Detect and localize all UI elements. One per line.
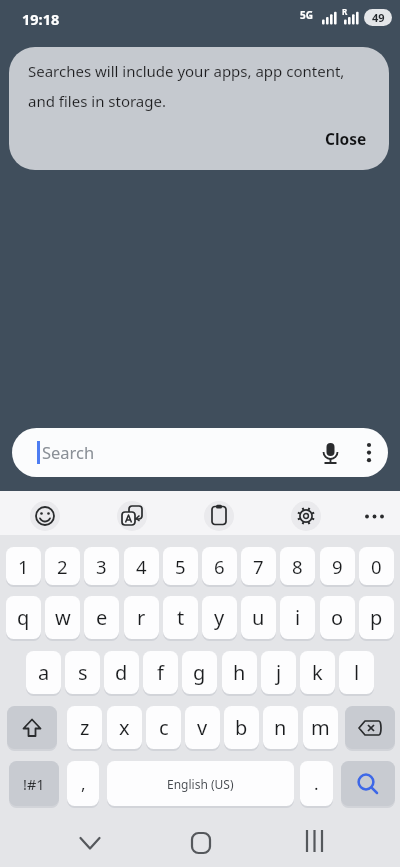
staticText: 4 bbox=[136, 554, 147, 579]
staticText: 5G bbox=[300, 8, 313, 22]
button[interactable] bbox=[300, 828, 330, 854]
button[interactable]: l bbox=[339, 651, 374, 694]
staticText: e bbox=[96, 604, 108, 631]
staticText: . bbox=[314, 772, 319, 795]
button[interactable]: r bbox=[124, 596, 159, 639]
button[interactable]: m bbox=[303, 706, 338, 749]
staticText: 49 bbox=[372, 10, 385, 25]
button[interactable]: t bbox=[163, 596, 198, 639]
button[interactable] bbox=[291, 501, 321, 531]
button[interactable]: y bbox=[202, 596, 237, 639]
staticText: 3 bbox=[96, 554, 107, 579]
staticText: z bbox=[80, 714, 90, 741]
button[interactable]: v bbox=[185, 706, 220, 749]
staticText: q bbox=[17, 604, 30, 631]
button[interactable]: b bbox=[224, 706, 259, 749]
button[interactable]: 0 bbox=[359, 547, 394, 585]
staticText: R bbox=[342, 6, 348, 17]
staticText: 2 bbox=[57, 554, 68, 579]
staticText: 1 bbox=[18, 554, 29, 579]
staticText: Searches will include your apps, app con… bbox=[28, 61, 345, 81]
staticText: y bbox=[214, 604, 225, 631]
staticText: 7 bbox=[253, 554, 264, 579]
staticText: a bbox=[38, 659, 50, 686]
button[interactable]: j bbox=[261, 651, 296, 694]
button[interactable]: x bbox=[107, 706, 142, 749]
button[interactable]: o bbox=[320, 596, 355, 639]
staticText: u bbox=[252, 604, 265, 631]
button[interactable]: u bbox=[241, 596, 276, 639]
button[interactable]: 6 bbox=[202, 547, 237, 585]
button[interactable]: i bbox=[280, 596, 315, 639]
staticText: English (US) bbox=[167, 776, 234, 792]
button[interactable]: f bbox=[143, 651, 178, 694]
staticText: g bbox=[193, 659, 206, 686]
staticText: !#1 bbox=[23, 774, 45, 794]
button[interactable]: Close bbox=[315, 120, 377, 156]
button[interactable] bbox=[341, 761, 395, 806]
staticText: Close bbox=[325, 128, 367, 149]
staticText: and files in storage. bbox=[28, 91, 166, 111]
button[interactable]: q bbox=[6, 596, 41, 639]
staticText: n bbox=[274, 714, 287, 741]
button[interactable]: w bbox=[45, 596, 80, 639]
staticText: k bbox=[312, 659, 323, 686]
staticText: p bbox=[370, 604, 383, 631]
staticText: , bbox=[81, 772, 86, 795]
button[interactable]: . bbox=[300, 761, 333, 806]
staticText: c bbox=[159, 714, 169, 741]
button[interactable]: 8 bbox=[280, 547, 315, 585]
button[interactable]: d bbox=[104, 651, 139, 694]
staticText: s bbox=[78, 659, 88, 686]
button[interactable]: p bbox=[359, 596, 394, 639]
button[interactable]: 1 bbox=[6, 547, 41, 585]
button[interactable]: z bbox=[67, 706, 102, 749]
button[interactable]: h bbox=[222, 651, 257, 694]
staticText: j bbox=[276, 659, 282, 686]
button[interactable]: !#1 bbox=[9, 761, 59, 806]
staticText: d bbox=[115, 659, 128, 686]
staticText: l bbox=[354, 659, 360, 686]
button[interactable]: n bbox=[263, 706, 298, 749]
button[interactable] bbox=[7, 706, 57, 749]
button[interactable]: 4 bbox=[124, 547, 159, 585]
button[interactable]: k bbox=[300, 651, 335, 694]
button[interactable]: g bbox=[182, 651, 217, 694]
button[interactable] bbox=[74, 831, 106, 857]
staticText: o bbox=[331, 604, 344, 631]
staticText: 0 bbox=[371, 554, 382, 579]
staticText: v bbox=[197, 714, 208, 741]
button[interactable] bbox=[204, 501, 234, 531]
button[interactable]: English (US) bbox=[107, 761, 294, 806]
button[interactable]: 7 bbox=[241, 547, 276, 585]
button[interactable] bbox=[357, 439, 381, 466]
staticText: 9 bbox=[332, 554, 343, 579]
staticText: Search bbox=[42, 441, 95, 463]
button[interactable] bbox=[345, 706, 395, 749]
staticText: r bbox=[137, 604, 146, 631]
staticText: w bbox=[55, 604, 71, 631]
button[interactable]: a bbox=[26, 651, 61, 694]
button[interactable]: s bbox=[65, 651, 100, 694]
button[interactable] bbox=[188, 830, 214, 856]
staticText: 19:18 bbox=[22, 9, 60, 29]
button[interactable]: c bbox=[146, 706, 181, 749]
button[interactable]: , bbox=[67, 761, 99, 806]
button[interactable] bbox=[117, 501, 147, 531]
staticText: m bbox=[311, 714, 330, 741]
staticText: i bbox=[295, 604, 301, 631]
staticText: x bbox=[119, 714, 130, 741]
button[interactable]: 9 bbox=[320, 547, 355, 585]
button[interactable]: 2 bbox=[45, 547, 80, 585]
button[interactable]: 5 bbox=[163, 547, 198, 585]
button[interactable]: Search bbox=[12, 428, 388, 477]
staticText: 5 bbox=[175, 554, 186, 579]
staticText: t bbox=[177, 604, 185, 631]
button[interactable] bbox=[30, 501, 60, 531]
staticText: b bbox=[235, 714, 248, 741]
staticText: h bbox=[233, 659, 246, 686]
button[interactable]: 3 bbox=[84, 547, 119, 585]
staticText: f bbox=[157, 659, 164, 686]
button[interactable]: e bbox=[84, 596, 119, 639]
button[interactable] bbox=[317, 439, 344, 466]
